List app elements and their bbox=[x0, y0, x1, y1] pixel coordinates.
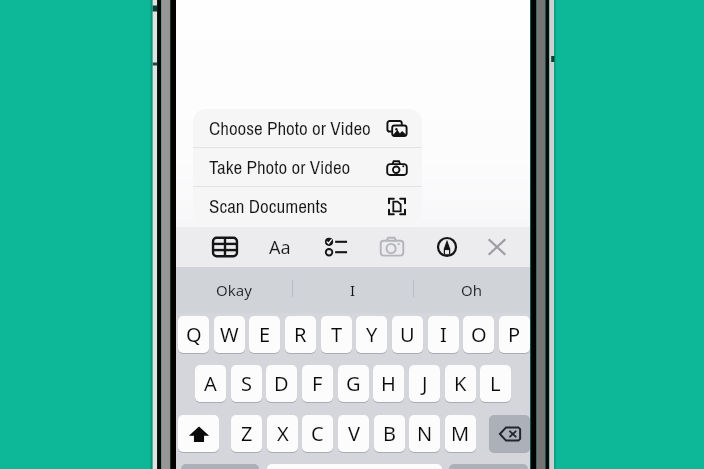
button[interactable]: U bbox=[392, 316, 423, 353]
button[interactable]: Checklist bbox=[320, 231, 352, 263]
button[interactable]: V bbox=[338, 415, 369, 452]
button[interactable]: Okay bbox=[176, 267, 292, 313]
staticText: Scan Documents bbox=[209, 193, 328, 219]
staticText: Choose Photo or Video bbox=[209, 115, 371, 141]
button[interactable]: E bbox=[249, 316, 280, 353]
button[interactable]: Q bbox=[178, 316, 209, 353]
button[interactable]: N bbox=[409, 415, 440, 452]
button[interactable]: A bbox=[195, 365, 226, 402]
button[interactable]: J bbox=[409, 365, 440, 402]
button[interactable]: Backspace bbox=[489, 415, 530, 452]
button[interactable]: Format bbox=[264, 231, 296, 263]
staticText: X bbox=[277, 420, 289, 447]
staticText: C bbox=[311, 420, 324, 447]
staticText: T bbox=[331, 321, 343, 348]
button[interactable]: H bbox=[373, 365, 404, 402]
staticText: O bbox=[471, 321, 487, 348]
button[interactable]: return bbox=[449, 464, 528, 469]
staticText: K bbox=[454, 370, 467, 397]
button[interactable]: Z bbox=[231, 415, 262, 452]
button[interactable]: Camera bbox=[376, 231, 408, 263]
staticText: Okay bbox=[216, 280, 252, 300]
staticText: U bbox=[400, 321, 415, 348]
staticText: N bbox=[417, 420, 433, 447]
staticText: V bbox=[348, 420, 360, 447]
button[interactable]: Choose Photo or Video bbox=[193, 109, 422, 147]
button[interactable]: Markup bbox=[431, 231, 463, 263]
staticText: Y bbox=[366, 321, 378, 348]
button[interactable]: S bbox=[231, 365, 262, 402]
button[interactable]: M bbox=[445, 415, 476, 452]
button[interactable]: Y bbox=[356, 316, 387, 353]
button[interactable]: F bbox=[302, 365, 333, 402]
button[interactable]: Close bbox=[481, 231, 513, 263]
staticText: L bbox=[490, 370, 501, 397]
staticText: Z bbox=[241, 420, 253, 447]
button[interactable]: I bbox=[428, 316, 459, 353]
staticText: Oh bbox=[461, 280, 482, 300]
button[interactable]: D bbox=[266, 365, 297, 402]
staticText: J bbox=[422, 370, 428, 397]
staticText: E bbox=[259, 321, 271, 348]
staticText: S bbox=[241, 370, 252, 397]
button[interactable]: space bbox=[267, 464, 442, 469]
staticText: G bbox=[346, 370, 361, 397]
staticText: Q bbox=[186, 321, 202, 348]
button[interactable]: P bbox=[499, 316, 530, 353]
button[interactable]: T bbox=[321, 316, 352, 353]
staticText: A bbox=[204, 370, 217, 397]
button[interactable]: W bbox=[214, 316, 245, 353]
staticText: H bbox=[381, 370, 396, 397]
staticText: R bbox=[294, 321, 307, 348]
button[interactable]: I bbox=[292, 267, 413, 313]
button[interactable]: Take Photo or Video bbox=[193, 148, 422, 186]
staticText: W bbox=[220, 321, 239, 348]
button[interactable]: O bbox=[463, 316, 494, 353]
button[interactable]: Shift bbox=[178, 415, 219, 452]
staticText: B bbox=[383, 420, 396, 447]
button[interactable]: X bbox=[267, 415, 298, 452]
button[interactable]: Scan Documents bbox=[193, 187, 422, 225]
staticText: Take Photo or Video bbox=[209, 154, 351, 180]
staticText: M bbox=[451, 420, 470, 447]
staticText: Aa bbox=[269, 235, 291, 260]
button[interactable]: G bbox=[338, 365, 369, 402]
staticText: F bbox=[312, 370, 323, 397]
button[interactable]: C bbox=[302, 415, 333, 452]
button[interactable]: R bbox=[285, 316, 316, 353]
staticText: I bbox=[440, 321, 447, 348]
button[interactable]: Table bbox=[209, 231, 241, 263]
button[interactable]: L bbox=[480, 365, 511, 402]
staticText: P bbox=[508, 321, 521, 348]
button[interactable]: Numbers bbox=[181, 464, 259, 469]
button[interactable]: Oh bbox=[413, 267, 530, 313]
button[interactable]: B bbox=[374, 415, 405, 452]
button[interactable]: K bbox=[445, 365, 476, 402]
staticText: D bbox=[274, 370, 289, 397]
staticText: I bbox=[350, 280, 356, 300]
